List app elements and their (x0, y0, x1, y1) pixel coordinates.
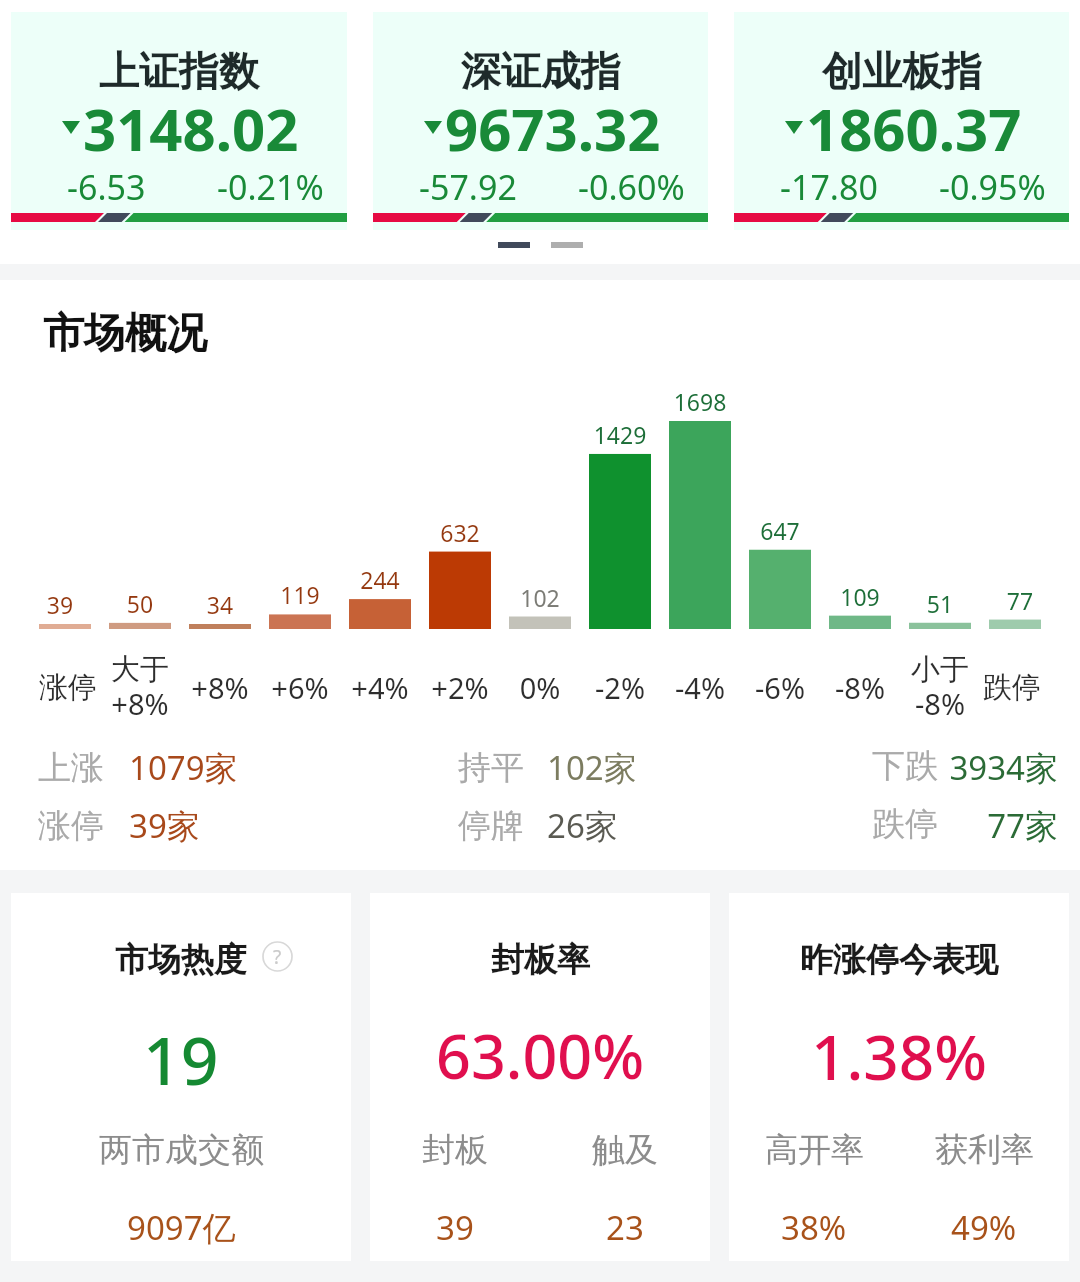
staticText: 1698 (640, 386, 760, 417)
staticText: 深证成指 (461, 46, 621, 96)
staticText: 下跌 (872, 745, 938, 787)
button[interactable]: 停牌 (458, 803, 618, 848)
staticText: 77 (960, 585, 1080, 616)
button[interactable]: 上涨 (38, 745, 238, 790)
button[interactable]: 封板率 (370, 893, 710, 1261)
staticText: 停牌 (458, 805, 524, 847)
staticText: 26家 (547, 803, 618, 848)
staticText: 1079家 (129, 745, 238, 790)
staticText: 高开率 (765, 1129, 864, 1171)
staticText: -6.53 (67, 164, 146, 210)
button[interactable]: 市场热度 (11, 893, 351, 1261)
staticText: 小于 -8% (880, 651, 1000, 724)
staticText: 上证指数 (99, 46, 259, 96)
staticText: 1.38% (811, 1014, 988, 1098)
staticText: 77家 (872, 803, 1058, 848)
staticText: 39家 (129, 803, 200, 848)
staticText: +8% (160, 668, 280, 707)
staticText: 9097亿 (127, 1205, 236, 1250)
staticText: 1860.37 (806, 89, 1022, 168)
staticText: 102家 (547, 745, 637, 790)
staticText: 封板率 (491, 939, 590, 981)
staticText: -8% (800, 668, 920, 707)
staticText: 119 (240, 579, 360, 610)
staticText: 跌停 (952, 669, 1072, 706)
staticText: 上涨 (38, 747, 104, 789)
staticText: 49% (951, 1205, 1017, 1250)
staticText: 涨停 (38, 805, 104, 847)
staticText: 0% (480, 668, 600, 707)
button[interactable]: 下跌 (872, 745, 1058, 790)
staticText: -17.80 (780, 164, 878, 210)
staticText: 1429 (560, 419, 680, 450)
staticText: 3148.02 (83, 89, 299, 168)
staticText: 63.00% (436, 1014, 645, 1097)
staticText: 两市成交额 (99, 1129, 264, 1171)
staticText: -4% (640, 668, 760, 707)
staticText: -57.92 (419, 164, 517, 210)
staticText: 19 (143, 1014, 219, 1104)
staticText: 51 (880, 588, 1000, 619)
button[interactable]: 帮助 (262, 941, 293, 972)
staticText: 9673.32 (445, 89, 661, 168)
staticText: 市场概况 (43, 308, 207, 360)
button[interactable]: 涨停 (38, 803, 200, 848)
staticText: 大于 +8% (80, 651, 200, 724)
staticText: 获利率 (935, 1129, 1034, 1171)
staticText: +2% (400, 668, 520, 707)
staticText: +6% (240, 668, 360, 707)
staticText: -6% (720, 668, 840, 707)
staticText: 3934家 (872, 745, 1058, 790)
staticText: 39 (0, 589, 120, 620)
staticText: 38% (781, 1205, 847, 1250)
staticText: -0.21% (217, 164, 324, 210)
staticText: 50 (80, 588, 200, 619)
button[interactable]: 持平 (458, 745, 637, 790)
staticText: 跌停 (872, 803, 938, 845)
staticText: 109 (800, 581, 920, 612)
staticText: +4% (320, 668, 440, 707)
staticText: 市场热度 (115, 939, 247, 981)
staticText: 涨停 (8, 669, 128, 706)
button[interactable]: 上证指数 (11, 12, 347, 230)
button[interactable]: 昨涨停今表现 (729, 893, 1069, 1261)
staticText: 持平 (458, 747, 524, 789)
button[interactable]: 跌停 (872, 803, 1058, 848)
staticText: 封板 (422, 1129, 488, 1171)
staticText: -2% (560, 668, 680, 707)
button[interactable]: 深证成指 (373, 12, 708, 230)
staticText: 昨涨停今表现 (800, 939, 998, 981)
staticText: 触及 (592, 1129, 658, 1171)
staticText: 23 (606, 1205, 644, 1250)
staticText: 244 (320, 564, 440, 595)
staticText: -0.60% (578, 164, 685, 210)
staticText: 632 (400, 517, 520, 548)
staticText: 102 (480, 582, 600, 613)
button[interactable]: 创业板指 (734, 12, 1069, 230)
staticText: 创业板指 (822, 46, 982, 96)
staticText: ? (273, 944, 282, 970)
staticText: 39 (436, 1205, 474, 1250)
staticText: 34 (160, 589, 280, 620)
staticText: 647 (720, 515, 840, 546)
staticText: -0.95% (939, 164, 1046, 210)
